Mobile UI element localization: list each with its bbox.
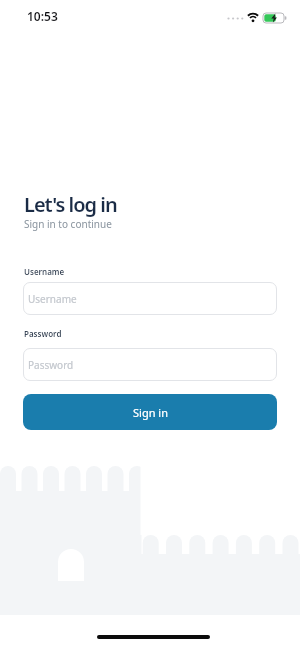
staticText: Password: [28, 358, 74, 372]
staticText: Password: [24, 328, 62, 339]
staticText: Username: [28, 292, 77, 306]
staticText: 10:53: [27, 8, 58, 24]
button[interactable]: Username: [23, 282, 277, 315]
button[interactable]: Sign in: [23, 394, 277, 430]
button[interactable]: Password: [23, 348, 277, 381]
staticText: Username: [24, 266, 65, 277]
staticText: Let's log in: [24, 191, 117, 218]
staticText: Sign in: [133, 405, 168, 420]
staticText: Sign in to continue: [24, 217, 112, 231]
